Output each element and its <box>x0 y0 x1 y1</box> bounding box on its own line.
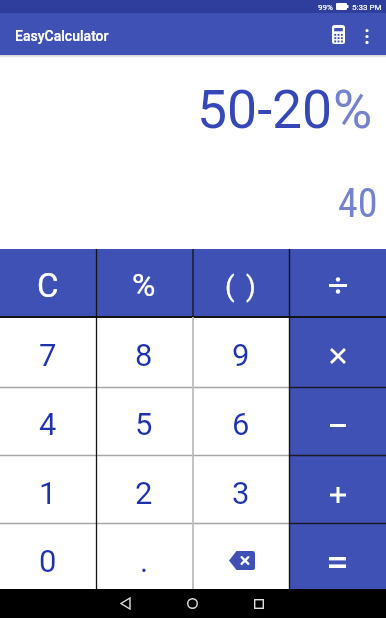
button[interactable] <box>289 317 386 388</box>
button[interactable]: 9 <box>192 317 289 388</box>
button[interactable] <box>175 589 209 618</box>
staticText: 2 <box>135 475 153 511</box>
button[interactable]: 6 <box>192 388 289 456</box>
button[interactable]: C <box>0 249 96 317</box>
button[interactable]: ( <box>192 249 289 317</box>
staticText: 7 <box>39 337 57 373</box>
button[interactable]: 4 <box>0 388 96 456</box>
button[interactable]: . <box>96 524 192 589</box>
button[interactable]: % <box>96 249 192 317</box>
button[interactable] <box>289 388 386 456</box>
staticText: 6 <box>232 406 250 442</box>
staticText: 40 <box>338 180 378 227</box>
staticText: ( <box>225 270 235 303</box>
staticText: 8 <box>135 337 153 373</box>
button[interactable] <box>192 524 289 589</box>
staticText: 5:33 PM <box>352 3 382 12</box>
staticText: 1 <box>39 475 57 511</box>
staticText: EasyCalculator <box>15 28 109 44</box>
button[interactable]: 8 <box>96 317 192 388</box>
staticText: 0 <box>39 543 57 579</box>
button[interactable]: 3 <box>192 456 289 524</box>
staticText: 5 <box>135 406 153 442</box>
button[interactable] <box>353 13 381 55</box>
button[interactable] <box>242 589 276 618</box>
staticText: 99% <box>318 3 333 12</box>
button[interactable] <box>289 456 386 524</box>
staticText: 4 <box>39 406 57 442</box>
staticText: . <box>140 543 149 579</box>
button[interactable] <box>289 249 386 317</box>
staticText: % <box>132 266 156 304</box>
button[interactable]: 7 <box>0 317 96 388</box>
staticText: 3 <box>232 475 250 511</box>
staticText: C <box>37 266 59 305</box>
button[interactable]: 0 <box>0 524 96 589</box>
staticText: 9 <box>232 337 250 373</box>
staticText: % <box>333 78 373 141</box>
button[interactable] <box>289 524 386 589</box>
button[interactable] <box>108 589 142 618</box>
button[interactable]: 1 <box>0 456 96 524</box>
button[interactable]: 5 <box>96 388 192 456</box>
staticText: 50-20 <box>197 78 333 141</box>
button[interactable]: 2 <box>96 456 192 524</box>
button[interactable] <box>323 13 353 55</box>
staticText: ) <box>246 270 256 303</box>
